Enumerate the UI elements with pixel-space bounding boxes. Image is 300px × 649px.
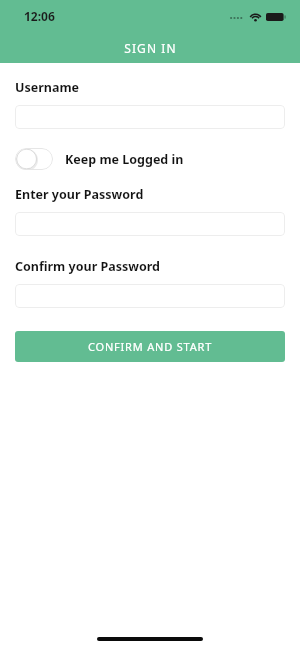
button[interactable] (15, 284, 285, 308)
staticText: Enter your Password (15, 186, 144, 203)
button[interactable]: CONFIRM AND START (15, 331, 285, 362)
button[interactable] (15, 212, 285, 236)
staticText: 12:06 (24, 8, 55, 24)
staticText: SIGN IN (124, 40, 177, 56)
button[interactable] (15, 105, 285, 129)
staticText: Confirm your Password (15, 258, 161, 275)
other: Home indicator (97, 637, 203, 641)
staticText: Keep me Logged in (65, 151, 184, 168)
button[interactable]: Keep me Logged in (15, 146, 285, 172)
staticText: CONFIRM AND START (88, 339, 213, 354)
staticText: Username (15, 79, 80, 96)
